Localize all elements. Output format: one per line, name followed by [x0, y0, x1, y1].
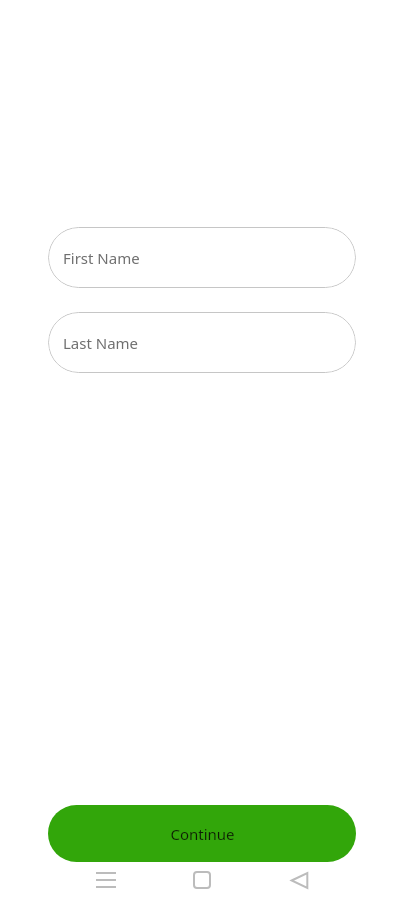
staticText: First Name [63, 248, 140, 268]
button[interactable]: First Name [48, 227, 356, 288]
staticText: Continue [170, 824, 235, 844]
button[interactable]: Recent apps [82, 856, 130, 900]
staticText: Last Name [63, 333, 139, 353]
button[interactable]: Home [178, 856, 226, 900]
button[interactable]: Last Name [48, 312, 356, 373]
button[interactable]: Continue [48, 805, 356, 862]
button[interactable]: Back [275, 856, 323, 900]
